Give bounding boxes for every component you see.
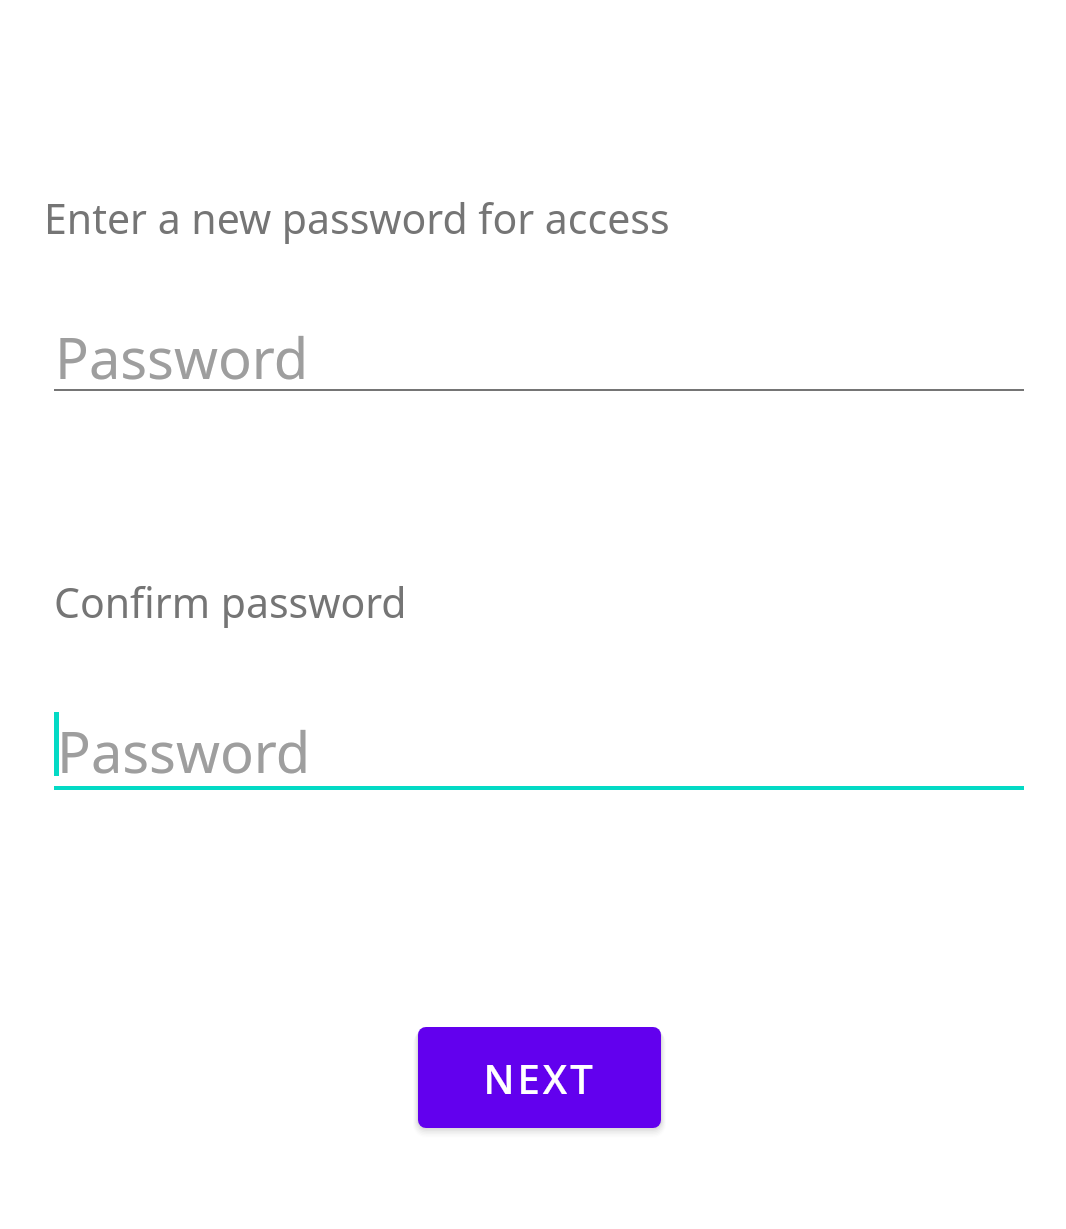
staticText: Password (57, 713, 311, 789)
staticText: Enter a new password for access (44, 190, 670, 246)
staticText: Password (55, 319, 309, 395)
staticText: Confirm password (54, 574, 407, 630)
button[interactable]: NEXT (418, 1027, 661, 1128)
button[interactable]: Password (54, 702, 1024, 790)
staticText: NEXT (483, 1051, 596, 1105)
button[interactable]: Password (54, 305, 1024, 391)
